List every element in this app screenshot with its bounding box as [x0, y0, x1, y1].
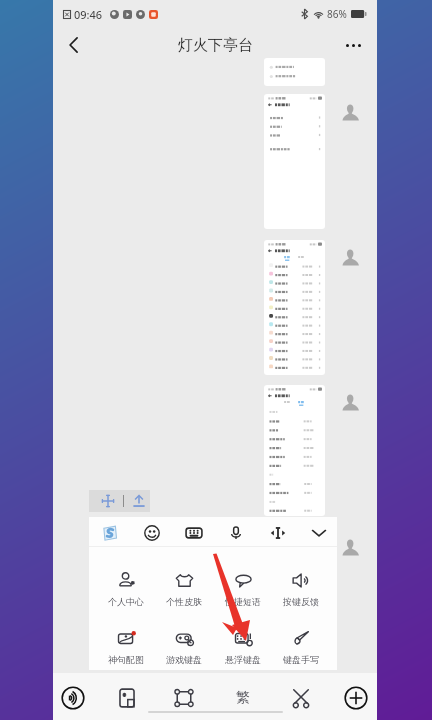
button[interactable]: Keyboard layout [181, 520, 207, 546]
button[interactable]: Screenshot [264, 94, 325, 229]
button[interactable]: Move cursor [265, 520, 291, 546]
staticText: 游戏键盘 [166, 654, 202, 665]
staticText: 86% [327, 7, 347, 21]
button[interactable]: 繁 [229, 684, 257, 712]
button[interactable]: 个性皮肤 [155, 571, 213, 607]
button[interactable]: Screenshot [264, 58, 325, 86]
staticText: 繁 [236, 689, 250, 707]
button[interactable]: Back [57, 29, 89, 61]
staticText: 神句配图 [108, 654, 144, 665]
button[interactable]: 快捷短语 [214, 571, 272, 607]
button[interactable]: 神句配图 [97, 629, 155, 665]
button[interactable]: Cut [285, 682, 317, 714]
button[interactable]: Add [340, 682, 372, 714]
button[interactable]: 键盘手写 [272, 629, 330, 665]
button[interactable]: 游戏键盘 [155, 629, 213, 665]
button[interactable]: Collapse keyboard [306, 520, 332, 546]
button[interactable]: Sound [57, 682, 89, 714]
button[interactable]: More options [340, 32, 366, 58]
button[interactable]: Screenshot [264, 385, 325, 516]
button[interactable]: 个人中心 [97, 571, 155, 607]
staticText: 个性皮肤 [166, 596, 202, 607]
button[interactable]: 按键反馈 [272, 571, 330, 607]
staticText: 键盘手写 [283, 654, 319, 665]
button[interactable]: Sogou input [97, 520, 123, 546]
button[interactable]: Move and share [89, 490, 150, 512]
button[interactable]: Emoji [139, 520, 165, 546]
staticText: 灯火下亭台 [178, 36, 253, 55]
button[interactable]: Voice input [223, 520, 249, 546]
staticText: 悬浮键盘 [225, 654, 261, 665]
staticText: 个人中心 [108, 596, 144, 607]
button[interactable]: 悬浮键盘 [214, 629, 272, 665]
staticText: 快捷短语 [225, 596, 261, 607]
button[interactable]: Watermark [111, 682, 143, 714]
staticText: 09:46 [74, 7, 103, 22]
button[interactable]: Screenshot [264, 240, 325, 375]
staticText: 按键反馈 [283, 596, 319, 607]
button[interactable]: Crop [168, 682, 200, 714]
